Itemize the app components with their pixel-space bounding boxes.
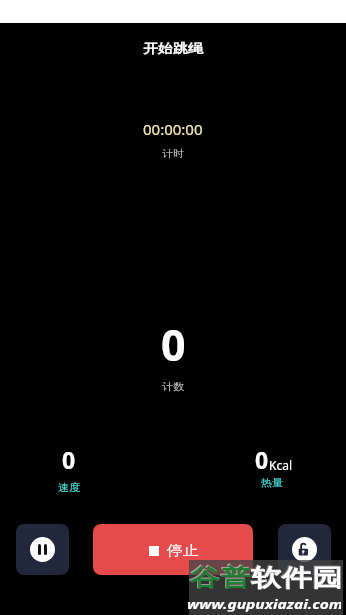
staticText: 0 [255, 444, 269, 475]
staticText: 计数 [162, 380, 184, 392]
staticText: 软件园 [250, 562, 342, 592]
button[interactable]: Lock [278, 524, 331, 575]
staticText: 0 [62, 444, 76, 475]
staticText: 计时 [162, 147, 184, 159]
button[interactable]: 停止 [93, 524, 253, 575]
staticText: 热量 [261, 476, 283, 488]
staticText: 谷普 [190, 563, 251, 593]
staticText: Kcal [269, 457, 293, 473]
staticText: 00:00:00 [143, 119, 203, 139]
staticText: 速度 [58, 481, 80, 493]
button[interactable]: Pause [16, 524, 69, 575]
staticText: 谷普 [189, 562, 250, 592]
staticText: 开始跳绳 [143, 42, 203, 57]
staticText: 停止 [167, 542, 199, 559]
staticText: www.gupuxiazai.com [187, 595, 341, 612]
staticText: 0 [161, 315, 186, 374]
staticText: 软件园 [251, 563, 343, 593]
